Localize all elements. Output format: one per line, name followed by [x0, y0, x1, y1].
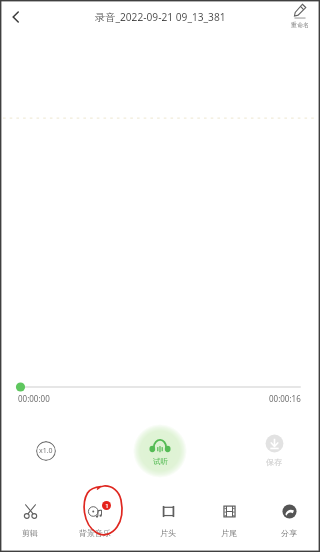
staticText: 片头	[160, 528, 176, 538]
staticText: 录音_2022-09-21 09_13_381	[95, 10, 226, 24]
staticText: 试听	[153, 457, 168, 466]
button[interactable]	[133, 424, 187, 478]
staticText: 00:00:00	[18, 393, 50, 404]
staticText: 1	[105, 502, 109, 510]
button[interactable]: 分享	[259, 500, 319, 552]
staticText: 保存	[266, 457, 282, 467]
staticText: 分享	[281, 528, 297, 538]
button[interactable]: 片头	[138, 500, 198, 552]
button[interactable]: 重命名	[280, 0, 320, 33]
button[interactable]: Back	[3, 4, 29, 30]
button[interactable]: 剪辑	[0, 500, 60, 552]
staticText: x1.0	[39, 446, 53, 456]
button[interactable]: 试听	[137, 428, 183, 474]
button[interactable]: x1.0	[36, 441, 56, 461]
button[interactable]: 保存	[256, 434, 292, 467]
staticText: 00:00:16	[269, 393, 301, 404]
staticText: 剪辑	[22, 528, 38, 538]
staticText: 背景音乐	[79, 528, 111, 538]
button[interactable]: 片尾	[199, 500, 259, 552]
staticText: 重命名	[291, 21, 309, 29]
staticText: 片尾	[221, 528, 237, 538]
button[interactable]: 1	[65, 500, 125, 552]
